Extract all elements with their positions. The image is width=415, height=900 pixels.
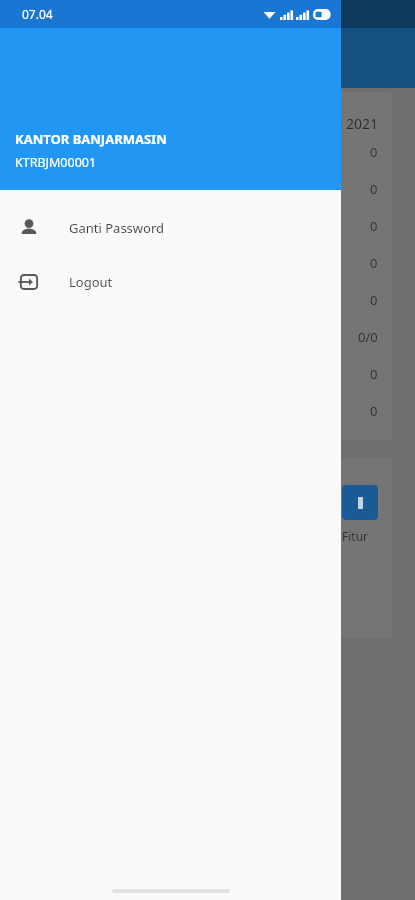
staticText: 0/0 (358, 328, 378, 346)
staticText: KTRBJM00001 (15, 154, 97, 171)
button[interactable]: Account (0, 201, 341, 255)
staticText: 0 (370, 254, 378, 272)
staticText: 0 (370, 291, 378, 309)
staticText: Laporan Januari 2021 (12, 114, 378, 133)
other: Account (18, 217, 40, 239)
other: Logout (18, 271, 40, 293)
staticText: 0 (370, 143, 378, 161)
staticText: Ganti Password (69, 219, 165, 237)
staticText: Fitur (342, 528, 369, 544)
staticText: 07.04 (22, 6, 53, 22)
staticText: 0 (370, 402, 378, 420)
staticText: 0 (370, 365, 378, 383)
staticText: 0 (370, 180, 378, 198)
staticText: 0 (370, 217, 378, 235)
button[interactable]: Logout (0, 255, 341, 309)
staticText: Logout (69, 273, 113, 291)
staticText: KANTOR BANJARMASIN (15, 130, 167, 148)
